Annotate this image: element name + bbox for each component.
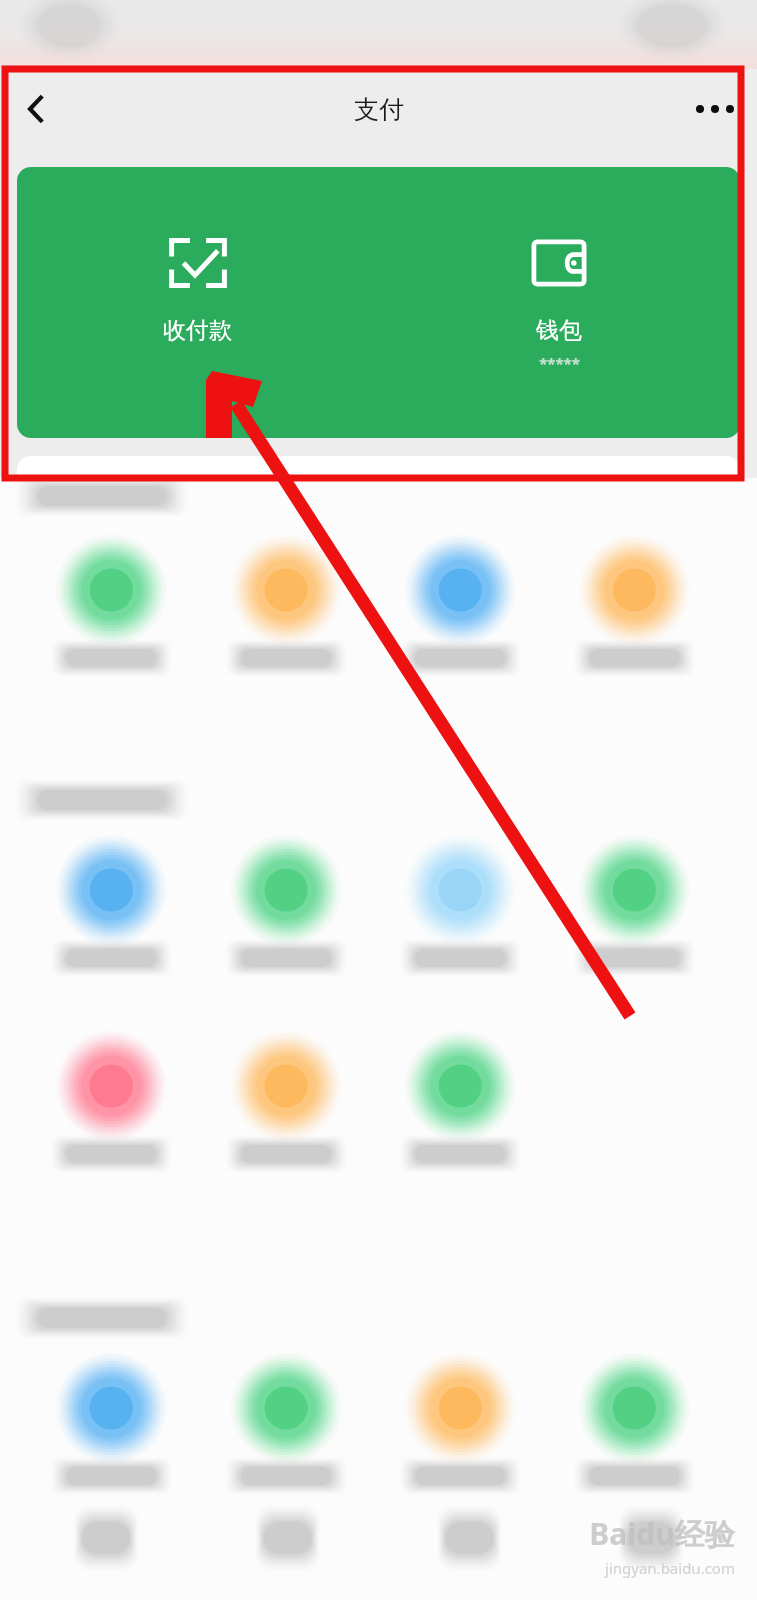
button[interactable]: 收付款: [17, 167, 378, 345]
button[interactable]: More options: [685, 79, 745, 139]
staticText: jingyan.baidu.com: [605, 1558, 735, 1578]
staticText: 钱包: [536, 316, 582, 345]
button[interactable]: Back: [8, 81, 64, 137]
staticText: Baidu经验: [589, 1513, 735, 1554]
staticText: 收付款: [163, 316, 232, 345]
button[interactable]: 钱包: [378, 167, 740, 373]
staticText: 支付: [354, 94, 404, 125]
staticText: *****: [539, 353, 580, 373]
